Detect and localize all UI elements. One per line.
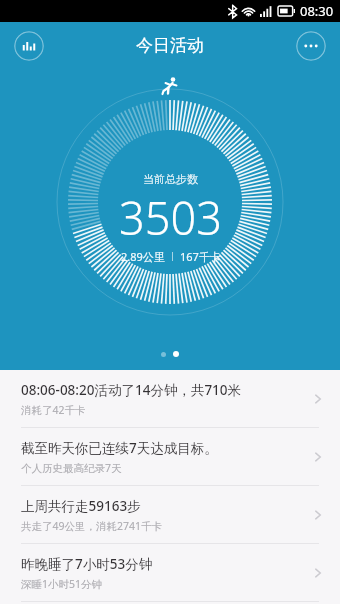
staticText: 个人历史最高纪录7天 <box>21 461 122 475</box>
staticText: 截至昨天你已连续7天达成目标。 <box>21 439 218 457</box>
button[interactable]: Page 1 <box>161 352 166 357</box>
staticText: 3503 <box>119 187 222 248</box>
staticText: 08:06-08:20活动了14分钟，共710米 <box>21 381 242 399</box>
button[interactable]: 截至昨天你已连续7天达成目标。 <box>0 428 340 485</box>
staticText: 昨晚睡了7小时53分钟 <box>21 555 153 573</box>
button[interactable]: More options <box>296 31 326 61</box>
staticText: 08:30 <box>300 2 334 20</box>
staticText: 共走了49公里，消耗2741千卡 <box>21 519 163 533</box>
button[interactable]: 昨晚睡了7小时53分钟 <box>0 544 340 601</box>
staticText: 消耗了42千卡 <box>21 403 86 417</box>
staticText: 167千卡 <box>180 249 221 264</box>
button[interactable]: Statistics <box>14 31 44 61</box>
staticText: 深睡1小时51分钟 <box>21 577 103 591</box>
button[interactable]: Page 2 <box>173 351 179 357</box>
staticText: 2.89公里 <box>121 249 165 264</box>
staticText: 今日活动 <box>136 35 204 56</box>
staticText: 当前总步数 <box>143 172 198 186</box>
staticText: 上周共行走59163步 <box>21 497 141 515</box>
button[interactable]: 08:06-08:20活动了14分钟，共710米 <box>0 370 340 427</box>
button[interactable]: 上周共行走59163步 <box>0 486 340 543</box>
